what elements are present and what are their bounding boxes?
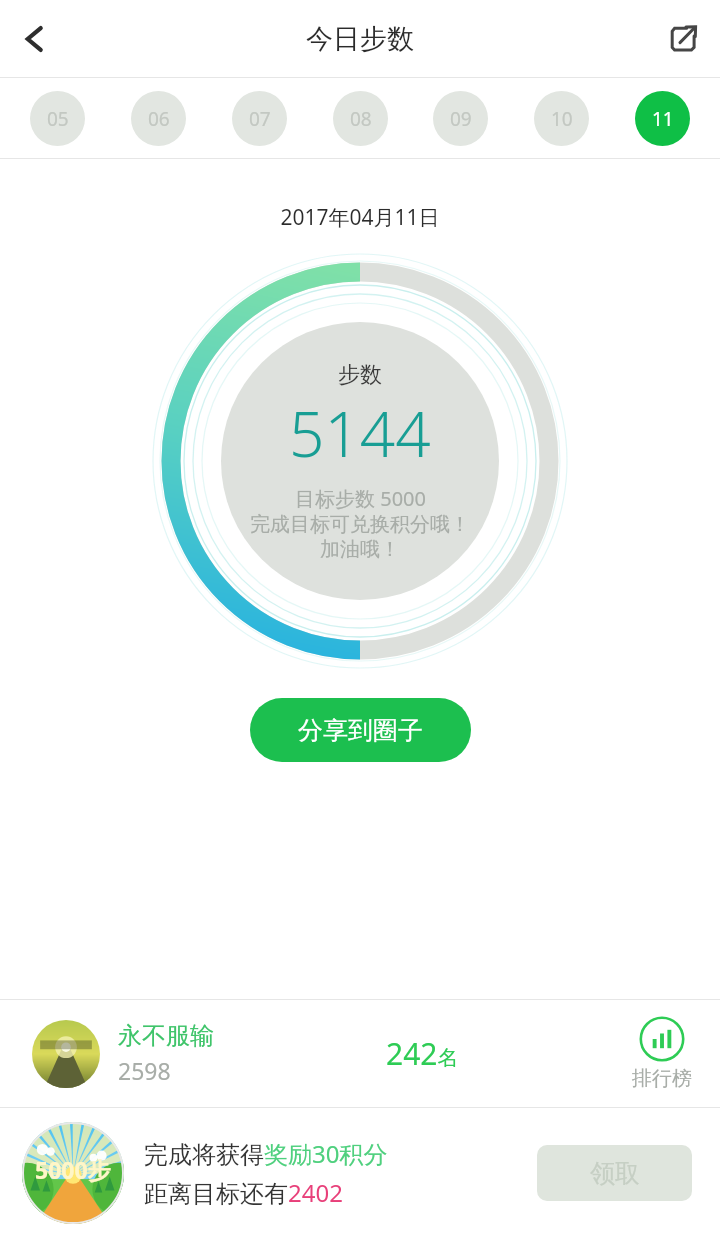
staticText: 领取 <box>590 1158 640 1189</box>
staticText: 08 <box>350 106 372 132</box>
staticText: 5000步 <box>35 1154 111 1185</box>
staticText: 目标步数 5000 <box>295 485 426 512</box>
staticText: 2017年04月11日 <box>0 203 720 232</box>
staticText: 06 <box>148 106 170 132</box>
staticText: 完成将获得奖励30积分 <box>144 1137 388 1170</box>
staticText: 07 <box>249 106 271 132</box>
button[interactable]: 排行榜 <box>632 1016 692 1091</box>
button[interactable]: Back <box>6 10 64 68</box>
button[interactable]: 08 <box>333 91 388 146</box>
button[interactable]: 永不服输 <box>0 1000 720 1107</box>
staticText: 距离目标还有2402 <box>144 1176 343 1209</box>
staticText: 加油哦！ <box>320 537 400 562</box>
staticText: 2598 <box>118 1055 171 1086</box>
staticText: 11 <box>652 106 674 132</box>
staticText: 10 <box>551 106 573 132</box>
button[interactable]: 11 <box>635 91 690 146</box>
staticText: 分享到圈子 <box>298 715 423 746</box>
staticText: 242名 <box>386 1033 459 1074</box>
staticText: 完成目标可兑换积分哦！ <box>250 512 470 537</box>
button[interactable]: 分享到圈子 <box>250 698 471 762</box>
button[interactable]: 05 <box>30 91 85 146</box>
button[interactable]: Share <box>654 10 712 68</box>
staticText: 排行榜 <box>632 1066 692 1091</box>
button[interactable]: 09 <box>433 91 488 146</box>
staticText: 今日步数 <box>306 22 414 56</box>
button[interactable]: 10 <box>534 91 589 146</box>
button[interactable]: 领取 <box>537 1145 692 1201</box>
button[interactable]: 06 <box>131 91 186 146</box>
staticText: 5144 <box>289 391 431 475</box>
staticText: 09 <box>450 106 472 132</box>
staticText: 步数 <box>338 361 382 389</box>
staticText: 永不服输 <box>118 1021 214 1051</box>
button[interactable]: 07 <box>232 91 287 146</box>
staticText: 05 <box>47 106 69 132</box>
